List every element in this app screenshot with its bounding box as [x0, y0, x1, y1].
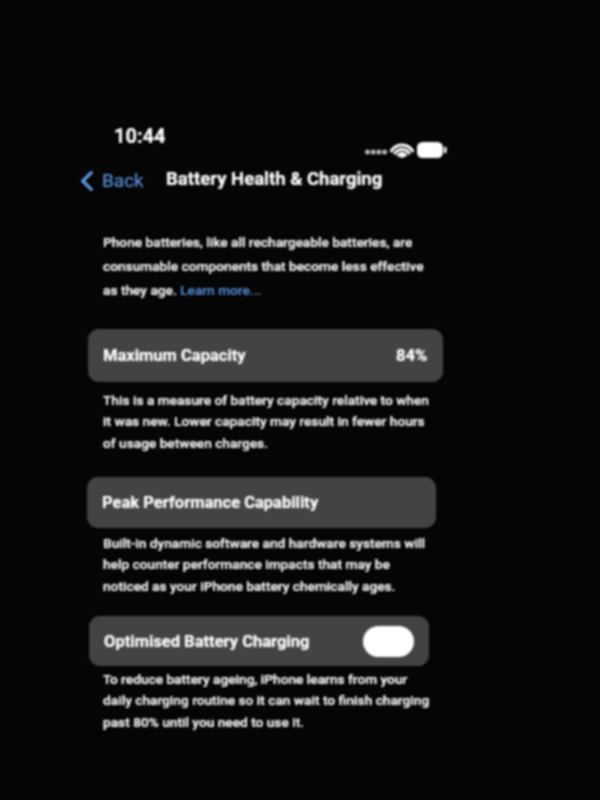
staticText: Optimised Battery Charging — [104, 632, 310, 651]
button[interactable]: Peak Performance Capability — [87, 477, 436, 528]
button[interactable]: Maximum Capacity — [88, 329, 443, 382]
staticText: 84% — [396, 346, 428, 365]
staticText: This is a measure of battery capacity re… — [103, 392, 435, 452]
staticText: Back — [102, 169, 144, 191]
button[interactable]: Optimised Battery Charging toggle — [363, 626, 414, 657]
staticText: To reduce battery ageing, iPhone learns … — [103, 671, 435, 731]
staticText: Built-in dynamic software and hardware s… — [103, 535, 435, 595]
staticText: Maximum Capacity — [103, 346, 246, 365]
staticText: Peak Performance Capability — [102, 493, 319, 512]
staticText: 10:44 — [114, 124, 166, 147]
button[interactable]: Optimised Battery Charging — [89, 616, 429, 666]
button[interactable]: Battery Health & Charging — [166, 168, 383, 190]
button[interactable]: Back — [77, 166, 148, 196]
staticText: Phone batteries, like all rechargeable b… — [103, 234, 439, 298]
